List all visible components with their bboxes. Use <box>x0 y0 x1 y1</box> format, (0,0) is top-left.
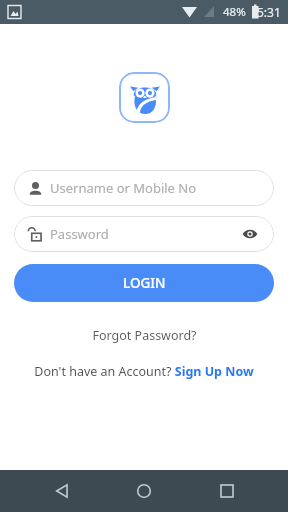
staticText: Username or Mobile No <box>50 179 197 197</box>
staticText: 5:31 <box>257 4 281 20</box>
button[interactable]: Home <box>123 470 165 512</box>
button[interactable]: Forgot Password? <box>84 324 205 347</box>
other: App logo <box>119 72 170 123</box>
button[interactable]: Don't have an Account? Sign Up Now <box>26 360 262 383</box>
button[interactable]: Back <box>41 470 83 512</box>
staticText: Password <box>50 225 240 243</box>
button[interactable]: LOGIN <box>14 264 274 302</box>
button[interactable]: Username or Mobile No <box>14 170 274 206</box>
button[interactable]: Password <box>14 216 274 252</box>
button[interactable]: Show password <box>240 224 260 244</box>
staticText: 48% <box>223 4 246 20</box>
staticText: LOGIN <box>123 274 166 292</box>
button[interactable]: Recent apps <box>206 470 248 512</box>
staticText: Forgot Password? <box>92 327 197 344</box>
staticText: Don't have an Account? Sign Up Now <box>34 363 254 380</box>
